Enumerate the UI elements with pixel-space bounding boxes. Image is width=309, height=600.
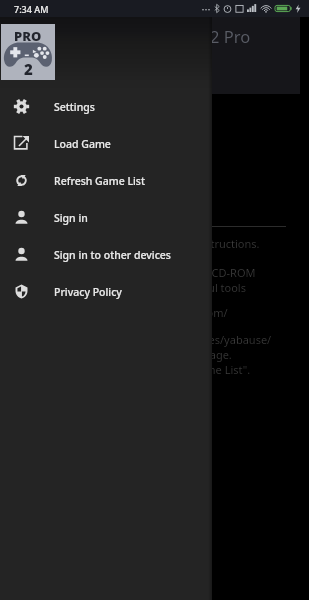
- other: Sign in: [14, 247, 29, 262]
- button[interactable]: Settings: [0, 88, 212, 125]
- other: Privacy Policy: [14, 284, 29, 299]
- button[interactable]: Refresh Game List: [0, 162, 212, 199]
- button[interactable]: Sign in: [0, 236, 212, 273]
- staticText: Sign in: [54, 211, 88, 225]
- button[interactable]: Sign in: [0, 199, 212, 236]
- other: Load Game: [14, 136, 29, 151]
- other: Settings: [14, 99, 29, 114]
- staticText: folder in your internal memory storage.: [16, 347, 232, 362]
- staticText: 2: [24, 59, 33, 79]
- staticText: PRO: [14, 27, 42, 45]
- staticText: Settings: [54, 100, 95, 114]
- button[interactable]: Privacy Policy: [0, 273, 212, 310]
- staticText: 3. Tap on the menu item "Refresh Game Li…: [16, 362, 251, 377]
- staticText: 7:34 AM: [14, 3, 49, 15]
- staticText: can be found at https://exsample.com/: [16, 305, 228, 320]
- staticText: Sign in to other devices: [54, 248, 171, 262]
- staticText: 1. Dump your own Sega Saturn game CD-ROM: [16, 265, 256, 280]
- staticText: 2. Copy the game image files to /games/y…: [16, 332, 272, 347]
- button[interactable]: Load Game: [0, 125, 212, 162]
- staticText: Please read carefully the following inst…: [16, 236, 260, 251]
- staticText: Load Game: [54, 137, 111, 151]
- other: Sign in: [14, 210, 29, 225]
- staticText: Refresh Game List: [54, 174, 145, 188]
- staticText: Privacy Policy: [54, 285, 122, 299]
- staticText: Yaba Sanshiro 2 Pro: [97, 25, 251, 47]
- other: Refresh Game List: [14, 173, 29, 188]
- staticText: images by using your own PC. Useful tool…: [16, 280, 246, 295]
